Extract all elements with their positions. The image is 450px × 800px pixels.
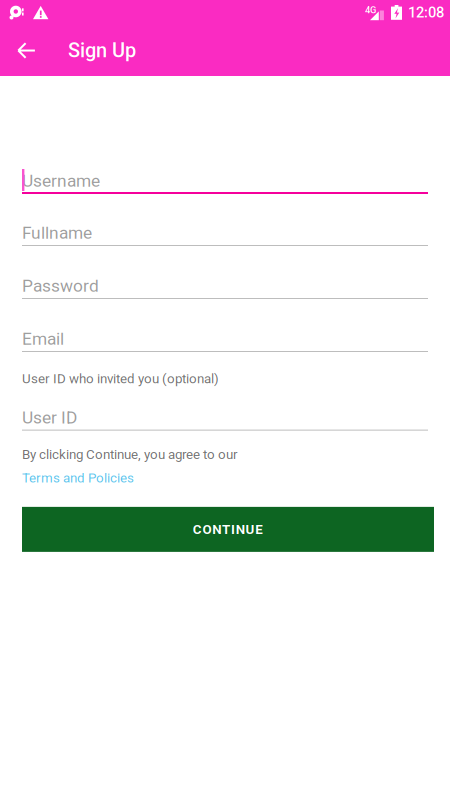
button[interactable]: Terms and Policies: [22, 470, 134, 486]
staticText: 4G: [365, 4, 376, 15]
staticText: Password: [22, 276, 99, 296]
staticText: User ID: [22, 407, 77, 428]
staticText: Username: [22, 171, 100, 191]
staticText: Terms and Policies: [22, 470, 134, 486]
staticText: Fullname: [22, 223, 92, 243]
button[interactable]: Email: [22, 322, 428, 352]
staticText: Email: [22, 329, 64, 349]
button[interactable]: Username: [22, 164, 428, 194]
button[interactable]: Fullname: [22, 216, 428, 246]
button[interactable]: Back: [0, 25, 53, 76]
staticText: Sign Up: [68, 39, 136, 62]
button[interactable]: User ID: [22, 401, 428, 431]
staticText: By clicking Continue, you agree to our: [22, 447, 238, 462]
staticText: 12:08: [408, 4, 444, 21]
button[interactable]: Password: [22, 269, 428, 299]
button[interactable]: CONTINUE: [22, 507, 434, 552]
staticText: User ID who invited you (optional): [22, 371, 219, 387]
staticText: CONTINUE: [193, 522, 263, 537]
